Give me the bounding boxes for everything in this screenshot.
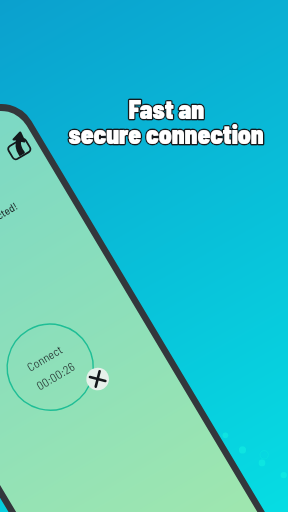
button[interactable] [0, 0, 288, 512]
